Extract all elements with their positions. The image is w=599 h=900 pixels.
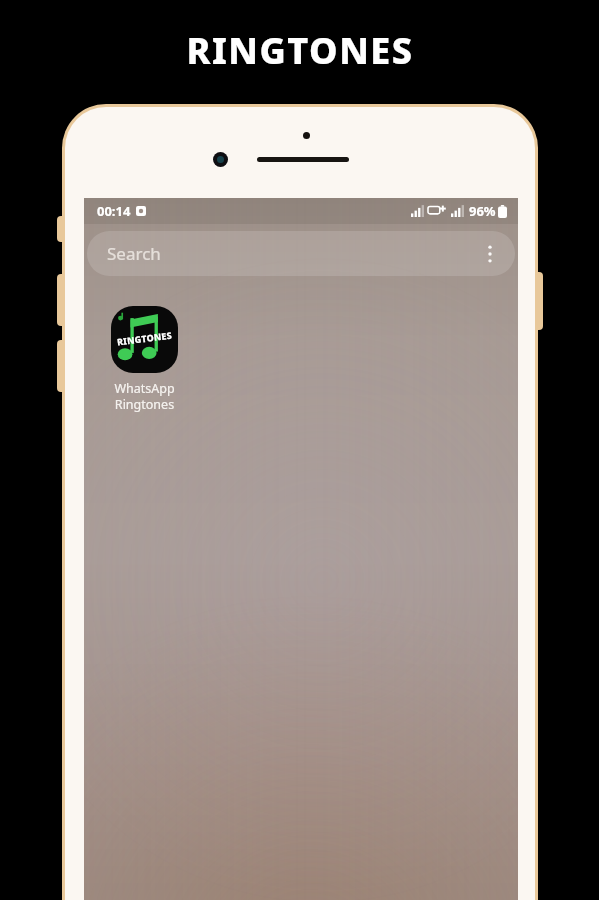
button[interactable]: Search [87,231,515,276]
button[interactable]: More options [477,241,503,267]
staticText: Search [107,242,161,265]
staticText: WhatsApp Ringtones [114,380,175,412]
button[interactable]: RINGTONES [95,306,193,412]
staticText: 00:14 [97,202,131,220]
staticText: RINGTONES [116,329,173,347]
staticText: 96% [469,202,496,220]
staticText: RINGTONES [186,26,414,75]
